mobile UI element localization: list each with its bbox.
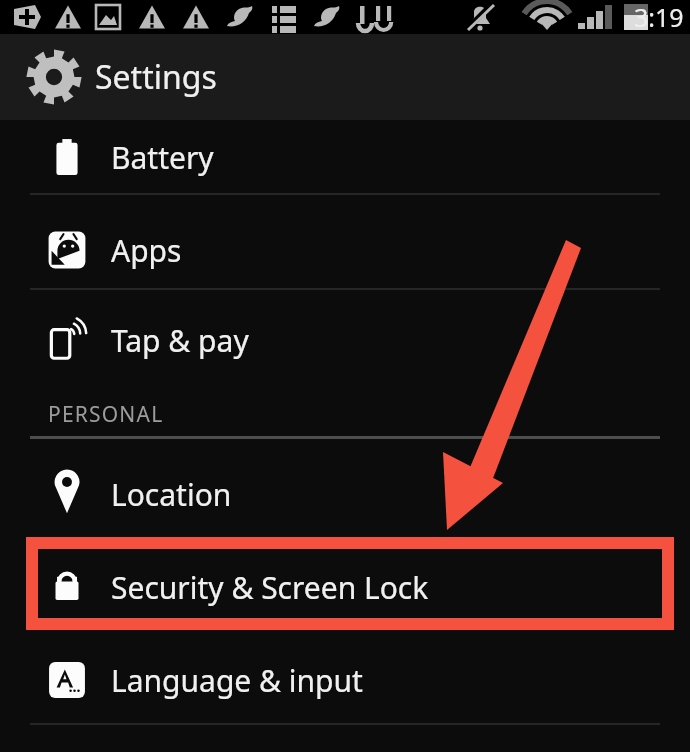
- button[interactable]: Security & Screen Lock: [0, 552, 690, 622]
- staticText: Security & Screen Lock: [111, 567, 429, 608]
- staticText: Location: [111, 474, 232, 515]
- staticText: 3:19: [634, 0, 684, 34]
- button[interactable]: Battery: [0, 122, 690, 192]
- button[interactable]: Tap & pay: [0, 305, 690, 375]
- button[interactable]: Settings: [0, 34, 690, 120]
- staticText: Settings: [95, 55, 217, 99]
- staticText: Tap & pay: [111, 320, 249, 361]
- other: Settings: [24, 47, 84, 107]
- button[interactable]: Apps: [0, 213, 690, 287]
- staticText: Language & input: [111, 660, 363, 701]
- button[interactable]: [26, 537, 674, 630]
- button[interactable]: Location: [0, 460, 690, 528]
- button[interactable]: Language & input: [0, 645, 690, 715]
- staticText: Battery: [111, 137, 214, 178]
- staticText: Apps: [111, 230, 182, 271]
- staticText: PERSONAL: [48, 400, 164, 429]
